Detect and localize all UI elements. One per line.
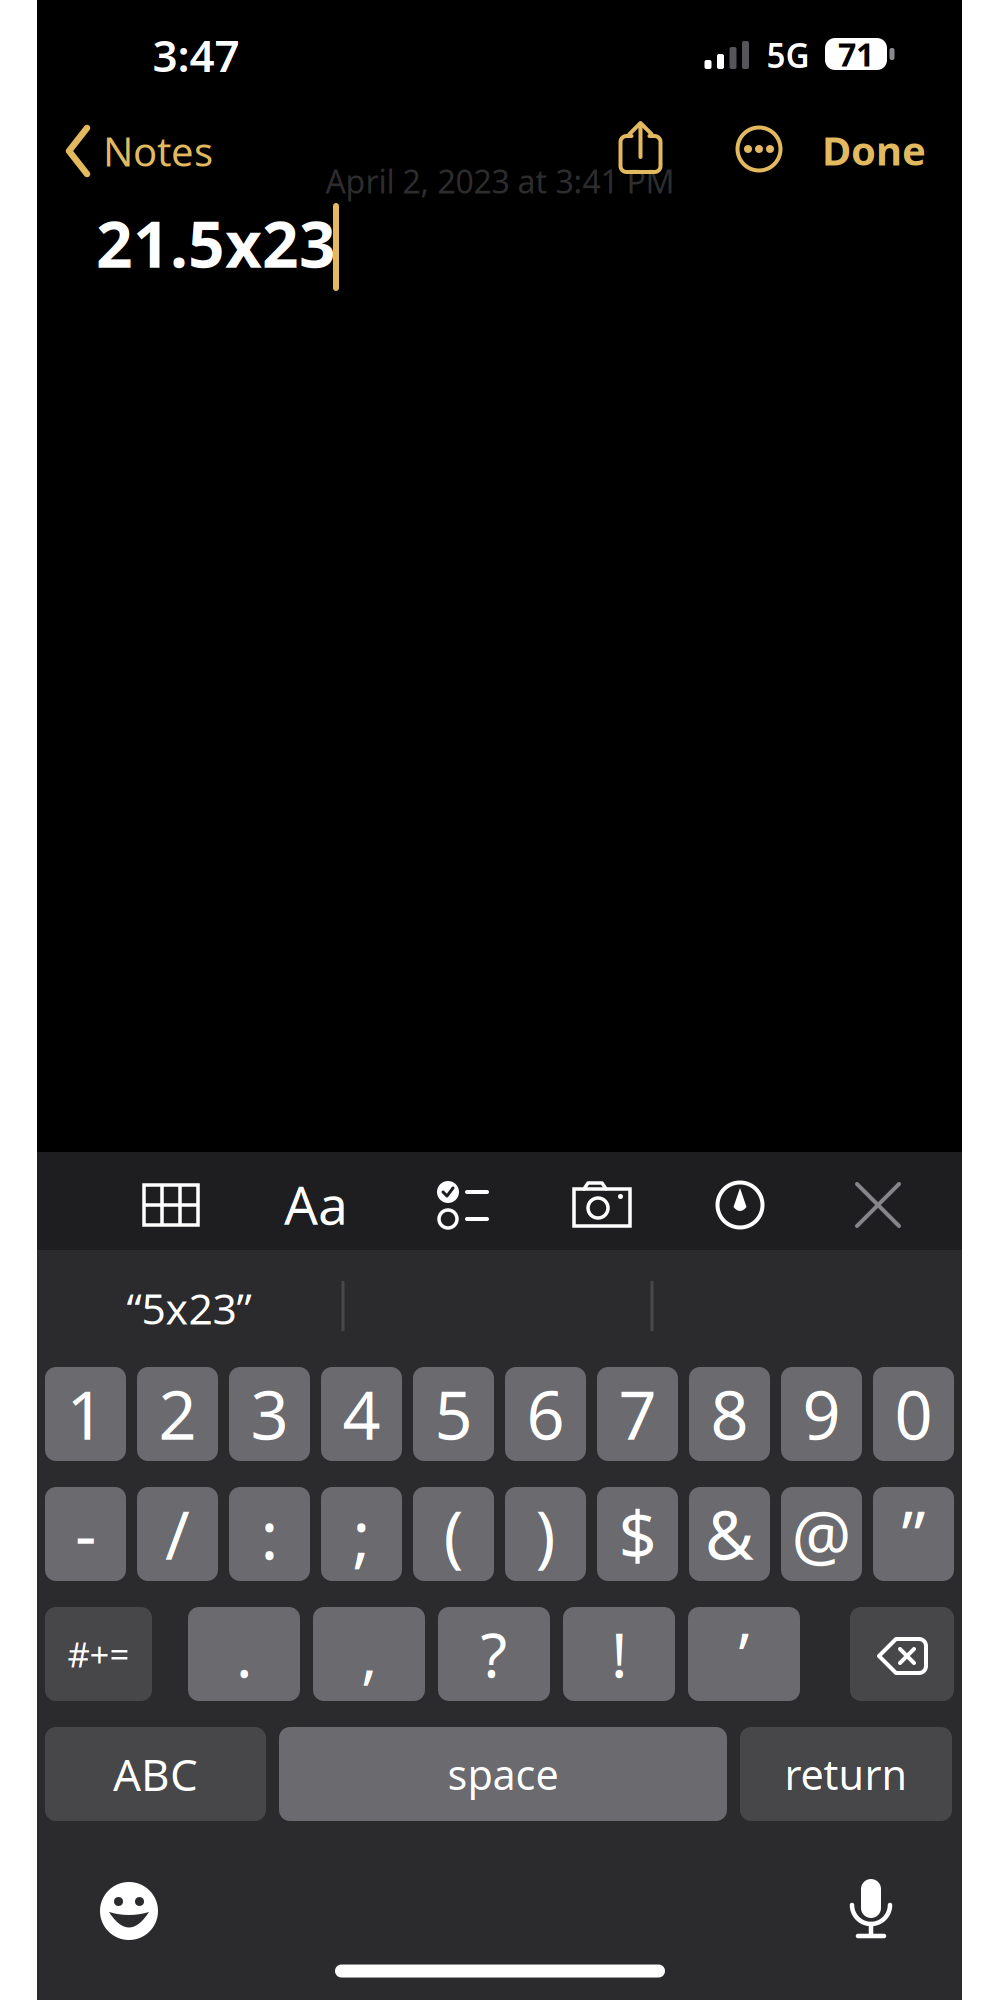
button[interactable]: ( — [413, 1487, 494, 1581]
button[interactable]: 5 — [413, 1367, 494, 1461]
button[interactable]: 4 — [321, 1367, 402, 1461]
staticText: 71 — [838, 33, 874, 75]
staticText: Aa — [284, 1169, 348, 1239]
staticText: ABC — [113, 1745, 198, 1803]
staticText: 2 — [158, 1370, 196, 1458]
staticText: - — [75, 1490, 96, 1578]
button[interactable]: ) — [505, 1487, 586, 1581]
button[interactable]: Delete — [850, 1607, 954, 1701]
button[interactable]: Camera — [572, 1181, 632, 1229]
button[interactable]: , — [313, 1607, 425, 1701]
staticText: ( — [443, 1490, 463, 1578]
staticText: 5 — [434, 1370, 472, 1458]
staticText: . — [236, 1613, 252, 1695]
button[interactable]: ABC — [45, 1727, 266, 1821]
staticText: April 2, 2023 at 3:41 PM — [325, 160, 674, 202]
button[interactable]: / — [137, 1487, 218, 1581]
staticText: Done — [822, 123, 926, 176]
button[interactable]: 8 — [689, 1367, 770, 1461]
button[interactable]: Format — [276, 1174, 356, 1234]
staticText: 9 — [802, 1370, 840, 1458]
staticText: space — [447, 1747, 558, 1801]
staticText: 3 — [250, 1370, 288, 1458]
button[interactable]: ’ — [688, 1607, 800, 1701]
button[interactable]: Share — [618, 120, 662, 176]
staticText: / — [165, 1490, 190, 1578]
staticText: 8 — [710, 1370, 748, 1458]
button[interactable]: - — [45, 1487, 126, 1581]
button[interactable]: 2 — [137, 1367, 218, 1461]
staticText: “5x23” — [126, 1280, 251, 1336]
button[interactable]: . — [188, 1607, 300, 1701]
button[interactable]: ” — [873, 1487, 954, 1581]
button[interactable]: ; — [321, 1487, 402, 1581]
staticText: 7 — [618, 1370, 656, 1458]
staticText: & — [705, 1490, 754, 1578]
staticText: ) — [535, 1490, 555, 1578]
button[interactable]: $ — [597, 1487, 678, 1581]
staticText: ’ — [738, 1613, 749, 1695]
staticText: : — [260, 1490, 278, 1578]
button[interactable]: ! — [563, 1607, 675, 1701]
button[interactable]: Done — [822, 123, 926, 176]
button[interactable]: Dictation — [848, 1878, 894, 1942]
staticText: Notes — [103, 124, 213, 177]
button[interactable]: Notes — [58, 120, 228, 182]
button[interactable]: & — [689, 1487, 770, 1581]
button[interactable]: @ — [781, 1487, 862, 1581]
button[interactable]: Close — [855, 1182, 901, 1228]
button[interactable]: #+= — [45, 1607, 152, 1701]
button[interactable]: Checklist — [437, 1181, 487, 1229]
button[interactable]: : — [229, 1487, 310, 1581]
button[interactable]: “5x23” — [39, 1258, 339, 1358]
staticText: , — [361, 1613, 377, 1695]
staticText: ? — [480, 1613, 507, 1695]
button[interactable]: 3 — [229, 1367, 310, 1461]
button[interactable]: More — [735, 125, 783, 173]
staticText: ; — [352, 1490, 370, 1578]
button[interactable]: 0 — [873, 1367, 954, 1461]
staticText: #+= — [67, 1631, 129, 1677]
button[interactable]: 7 — [597, 1367, 678, 1461]
button[interactable]: Table — [142, 1183, 200, 1227]
button[interactable]: 6 — [505, 1367, 586, 1461]
button[interactable]: space — [279, 1727, 727, 1821]
staticText: $ — [618, 1490, 656, 1578]
button[interactable]: ? — [438, 1607, 550, 1701]
staticText: 3:47 — [152, 26, 239, 84]
staticText: 6 — [526, 1370, 564, 1458]
staticText: ! — [611, 1613, 627, 1695]
button[interactable]: Markup — [715, 1180, 765, 1230]
staticText: 0 — [894, 1370, 932, 1458]
staticText: ” — [901, 1490, 925, 1578]
staticText: 5G — [766, 33, 809, 77]
button[interactable]: 1 — [45, 1367, 126, 1461]
staticText: @ — [791, 1490, 851, 1578]
button[interactable]: Emoji — [99, 1881, 159, 1941]
staticText: 1 — [66, 1370, 104, 1458]
button[interactable]: 9 — [781, 1367, 862, 1461]
staticText: return — [784, 1747, 907, 1801]
button[interactable]: return — [740, 1727, 952, 1821]
staticText: 4 — [342, 1370, 380, 1458]
staticText: 21.5x23 — [96, 200, 336, 285]
